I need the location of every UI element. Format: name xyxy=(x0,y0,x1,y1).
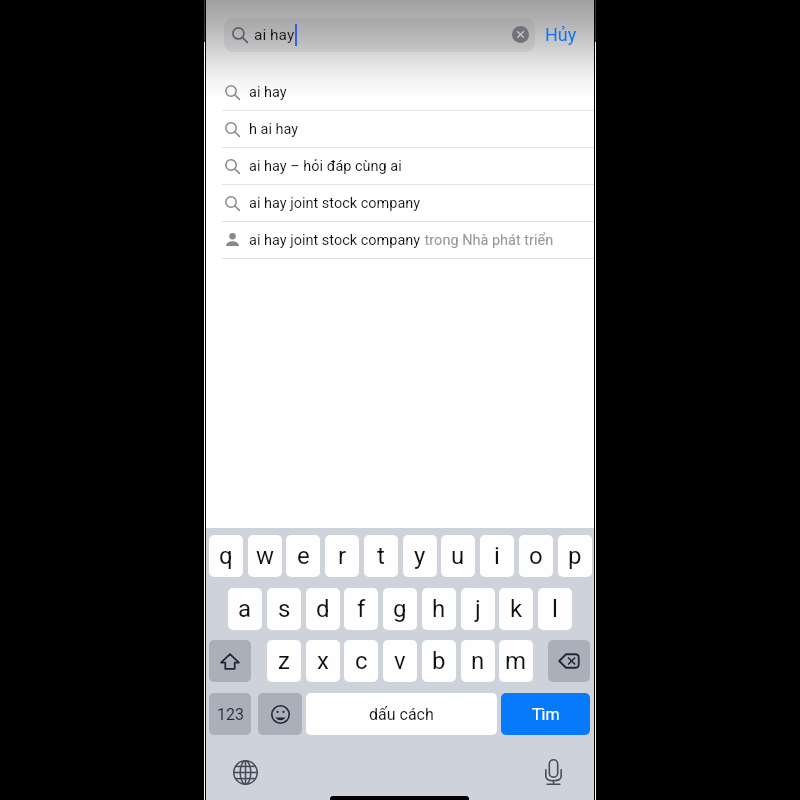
staticText: ai hay xyxy=(254,26,295,44)
staticText: 123 xyxy=(217,705,244,724)
button[interactable]: r xyxy=(325,535,359,577)
staticText: b xyxy=(432,647,446,675)
staticText: j xyxy=(475,595,481,623)
staticText: trong Nhà phát triển xyxy=(421,232,554,249)
staticText: ai hay xyxy=(249,84,287,101)
staticText: i xyxy=(494,542,500,570)
staticText: t xyxy=(377,542,385,570)
button[interactable]: b xyxy=(422,640,456,682)
button[interactable]: g xyxy=(383,588,417,630)
staticText: y xyxy=(414,542,426,570)
staticText: v xyxy=(394,647,406,675)
button[interactable]: Tìm xyxy=(501,693,590,735)
button[interactable]: i xyxy=(480,535,514,577)
button[interactable]: e xyxy=(286,535,320,577)
button[interactable]: q xyxy=(209,535,243,577)
staticText: c xyxy=(355,647,368,675)
button[interactable]: l xyxy=(538,588,572,630)
button[interactable]: m xyxy=(499,640,533,682)
staticText: f xyxy=(357,595,366,623)
button[interactable]: dấu cách xyxy=(306,693,497,735)
button[interactable]: f xyxy=(344,588,378,630)
button[interactable]: ai hay joint stock company xyxy=(206,185,594,221)
staticText: h ai hay xyxy=(249,121,299,138)
staticText: ai hay – hỏi đáp cùng ai xyxy=(249,158,402,175)
button[interactable]: ai hay xyxy=(206,74,594,110)
button[interactable]: Shift xyxy=(209,640,251,682)
button[interactable]: p xyxy=(558,535,592,577)
staticText: s xyxy=(278,595,291,623)
staticText: Hủy xyxy=(545,24,577,45)
staticText: q xyxy=(219,542,233,570)
button[interactable]: s xyxy=(267,588,301,630)
button[interactable]: Change keyboard xyxy=(229,756,261,788)
staticText: l xyxy=(552,595,558,623)
button[interactable]: t xyxy=(364,535,398,577)
staticText: e xyxy=(297,542,310,570)
staticText: Tìm xyxy=(532,705,560,724)
staticText: r xyxy=(338,542,347,570)
button[interactable]: x xyxy=(306,640,340,682)
staticText: ai hay joint stock company xyxy=(249,195,421,212)
button[interactable]: Clear search xyxy=(512,26,529,43)
button[interactable]: Dictate xyxy=(537,756,569,788)
staticText: u xyxy=(451,542,465,570)
button[interactable]: c xyxy=(344,640,378,682)
button[interactable]: ai hay – hỏi đáp cùng ai xyxy=(206,148,594,184)
button[interactable]: o xyxy=(519,535,553,577)
staticText: n xyxy=(471,647,485,675)
button[interactable]: v xyxy=(383,640,417,682)
button[interactable]: j xyxy=(461,588,495,630)
staticText: ai hay joint stock company xyxy=(249,232,421,249)
button[interactable]: n xyxy=(461,640,495,682)
button[interactable]: d xyxy=(306,588,340,630)
staticText: a xyxy=(238,595,252,623)
button[interactable]: u xyxy=(441,535,475,577)
staticText: dấu cách xyxy=(369,705,434,724)
staticText: p xyxy=(568,542,582,570)
staticText: h xyxy=(432,595,446,623)
button[interactable]: h ai hay xyxy=(206,111,594,147)
staticText: k xyxy=(510,595,523,623)
staticText: x xyxy=(317,647,329,675)
button[interactable]: Hủy xyxy=(539,16,583,53)
button[interactable]: w xyxy=(248,535,282,577)
staticText: m xyxy=(505,647,527,675)
button[interactable]: k xyxy=(499,588,533,630)
staticText: d xyxy=(316,595,330,623)
staticText: g xyxy=(393,595,407,623)
button[interactable]: ai hay xyxy=(224,18,535,52)
button[interactable]: z xyxy=(267,640,301,682)
button[interactable]: ai hay joint stock company xyxy=(206,222,594,258)
staticText: z xyxy=(278,647,290,675)
button[interactable]: 123 xyxy=(209,693,251,735)
staticText: w xyxy=(256,542,275,570)
button[interactable]: Backspace xyxy=(548,640,590,682)
button[interactable]: Emoji xyxy=(258,693,302,735)
button[interactable]: y xyxy=(403,535,437,577)
staticText: o xyxy=(529,542,543,570)
button[interactable]: a xyxy=(228,588,262,630)
button[interactable]: h xyxy=(422,588,456,630)
